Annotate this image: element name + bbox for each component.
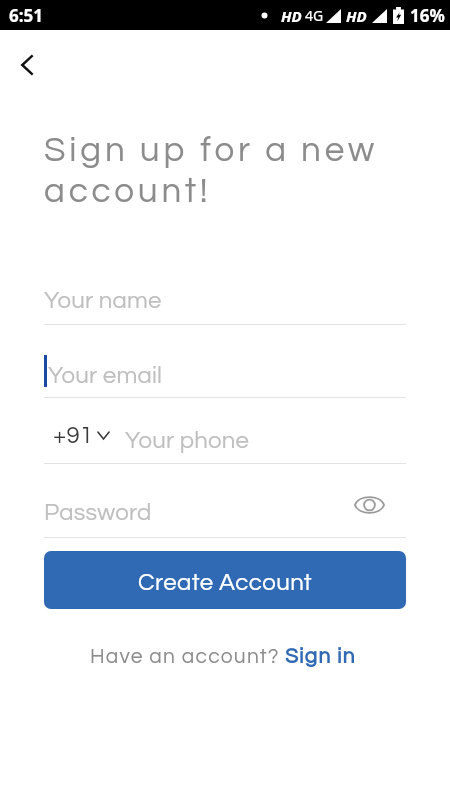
staticText: HD xyxy=(346,6,367,26)
button[interactable]: Your email xyxy=(44,327,406,397)
staticText: 4G xyxy=(305,6,324,25)
staticText: Password xyxy=(44,500,152,525)
button[interactable]: Show password xyxy=(349,485,389,525)
button[interactable]: +91 xyxy=(44,423,114,448)
button[interactable]: Sign in xyxy=(285,646,356,668)
staticText: Your phone xyxy=(125,428,250,453)
button[interactable]: Create Account xyxy=(44,551,406,609)
button[interactable]: Your name xyxy=(44,254,406,324)
staticText: 6:51 xyxy=(9,4,43,27)
staticText: +91 xyxy=(53,423,94,448)
staticText: Your email xyxy=(48,363,163,388)
staticText: Sign up for a new account! xyxy=(44,132,388,209)
staticText: Your name xyxy=(44,288,162,313)
button[interactable]: Back xyxy=(5,42,49,86)
staticText: HD xyxy=(281,6,302,26)
staticText: Have an account? xyxy=(90,646,280,668)
staticText: 16% xyxy=(410,4,445,27)
staticText: Create Account xyxy=(138,570,313,595)
